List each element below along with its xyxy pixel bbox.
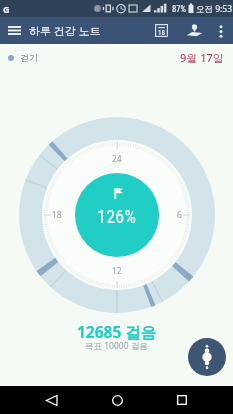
staticText: 9월 17일 (180, 50, 224, 65)
button[interactable]: 9월 17일 (180, 50, 224, 65)
staticText: 목표 10000 걸음 (85, 340, 148, 352)
button[interactable]: Home (103, 386, 131, 414)
button[interactable]: Location (181, 17, 208, 44)
button[interactable]: More actions (188, 338, 226, 376)
staticText: 24 (112, 153, 122, 165)
button[interactable]: 걷기 (8, 52, 38, 63)
staticText: 87% (172, 4, 186, 14)
staticText: 12 (112, 265, 122, 277)
staticText: 12685 걸음 (77, 321, 157, 342)
button[interactable]: Recents (168, 386, 196, 414)
staticText: 오전 9:53 (196, 3, 233, 15)
staticText: 18 (52, 209, 62, 221)
button[interactable]: Back (37, 386, 65, 414)
staticText: 걷기 (20, 52, 38, 63)
staticText: 126% (97, 206, 137, 227)
staticText: 6 (177, 209, 182, 221)
button[interactable]: Menu (0, 17, 28, 44)
staticText: G (3, 3, 10, 15)
button[interactable]: More options (209, 19, 233, 43)
staticText: 하루 건강 노트 (29, 23, 101, 38)
staticText: 18 (158, 29, 165, 37)
button[interactable]: Calendar (148, 17, 175, 44)
